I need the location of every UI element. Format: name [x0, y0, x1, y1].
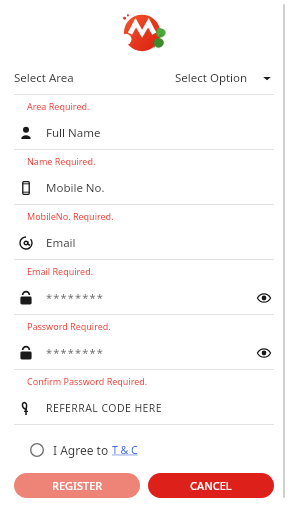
button[interactable]: Email [0, 226, 288, 259]
staticText: Password Required. [27, 320, 111, 332]
staticText: I Agree to [53, 442, 112, 458]
button[interactable]: Show password [254, 343, 274, 363]
staticText: Full Name [46, 125, 101, 141]
button[interactable]: I Agree to [0, 437, 288, 463]
staticText: T & C [112, 443, 138, 457]
button[interactable]: T & C [112, 443, 138, 457]
staticText: MobileNo. Required. [27, 210, 114, 222]
button[interactable]: REGISTER [14, 473, 140, 498]
button[interactable]: CANCEL [148, 473, 274, 498]
staticText: ******** [46, 345, 105, 360]
staticText: Confirm Password Required. [27, 375, 148, 387]
staticText: Select Area [14, 70, 74, 86]
staticText: Email Required. [27, 265, 94, 277]
button[interactable]: Show password [254, 288, 274, 308]
staticText: ******** [46, 290, 105, 305]
button[interactable]: Full Name [0, 116, 288, 149]
staticText: REGISTER [52, 478, 103, 493]
button[interactable]: REFERRAL CODE HERE [0, 391, 288, 424]
button[interactable]: Mobile No. [0, 171, 288, 204]
staticText: Select Option [175, 70, 248, 86]
staticText: Email [46, 235, 76, 251]
staticText: Area Required. [27, 100, 90, 112]
staticText: Mobile No. [46, 180, 105, 196]
staticText: REFERRAL CODE HERE [46, 401, 163, 415]
staticText: CANCEL [190, 478, 232, 493]
button[interactable]: Select Area [0, 62, 288, 94]
button[interactable]: ******** [0, 336, 288, 369]
button[interactable]: ******** [0, 281, 288, 314]
staticText: Name Required. [27, 155, 96, 167]
